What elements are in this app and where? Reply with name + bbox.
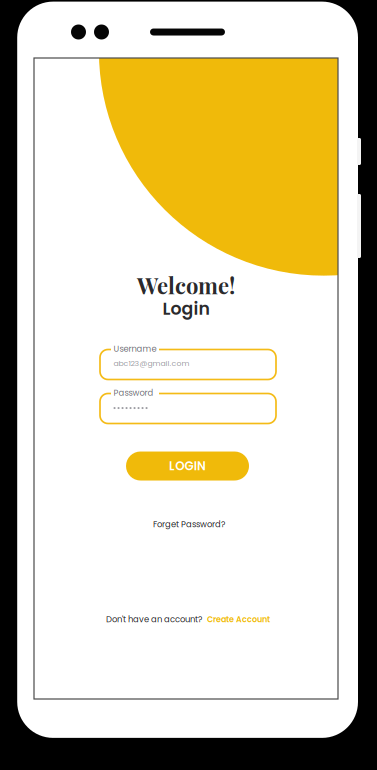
- staticText: Login: [162, 296, 209, 321]
- button[interactable]: Create Account: [207, 614, 270, 625]
- staticText: Welcome!: [137, 270, 235, 300]
- button[interactable]: Password: [100, 393, 276, 423]
- staticText: abc123@gmail.com: [113, 358, 189, 369]
- staticText: Password: [113, 387, 153, 399]
- staticText: Don't have an account?: [106, 613, 202, 625]
- button[interactable]: Forget Password?: [153, 518, 225, 530]
- staticText: LOGIN: [169, 458, 206, 474]
- staticText: Username: [113, 343, 156, 355]
- button[interactable]: LOGIN: [126, 451, 249, 480]
- button[interactable]: Username: [100, 349, 276, 379]
- staticText: Forget Password?: [153, 518, 225, 530]
- staticText: Create Account: [207, 614, 270, 625]
